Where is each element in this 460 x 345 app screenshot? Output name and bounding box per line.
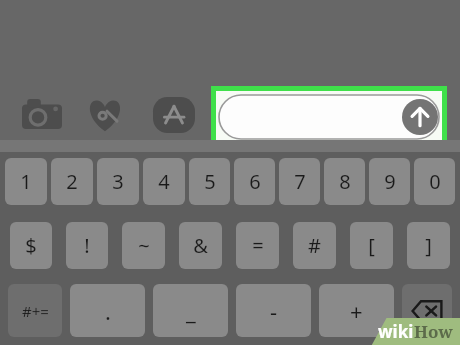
button[interactable]: 4 <box>143 158 185 205</box>
button[interactable]: Backspace <box>402 284 452 337</box>
button[interactable]: App Store <box>153 97 195 133</box>
staticText: = <box>252 232 264 259</box>
button[interactable]: + <box>319 284 394 337</box>
button[interactable]: Digital Touch <box>85 96 125 134</box>
button[interactable]: 1 <box>5 158 47 205</box>
button[interactable]: ~ <box>122 222 165 269</box>
button[interactable]: 6 <box>234 158 275 205</box>
button[interactable]: 5 <box>189 158 230 205</box>
staticText: - <box>270 296 278 326</box>
button[interactable]: #+= <box>8 284 62 337</box>
staticText: + <box>350 296 363 326</box>
button[interactable]: [ <box>350 222 393 269</box>
button[interactable]: = <box>236 222 279 269</box>
staticText: ~ <box>138 232 150 259</box>
staticText: & <box>193 232 208 259</box>
staticText: 8 <box>339 168 351 195</box>
staticText: _ <box>186 296 196 326</box>
button[interactable]: 3 <box>97 158 139 205</box>
staticText: 6 <box>249 168 261 195</box>
staticText: # <box>308 232 321 259</box>
staticText: . <box>105 296 111 326</box>
staticText: 3 <box>112 168 124 195</box>
staticText: 2 <box>66 168 78 195</box>
staticText: $ <box>25 232 37 259</box>
staticText: 7 <box>294 168 306 195</box>
button[interactable]: 9 <box>369 158 410 205</box>
staticText: wiki <box>378 320 414 343</box>
button[interactable]: Send <box>402 99 438 135</box>
staticText: 9 <box>384 168 396 195</box>
staticText: How <box>414 320 453 343</box>
button[interactable]: Send <box>216 91 442 143</box>
button[interactable]: # <box>293 222 336 269</box>
button[interactable]: & <box>179 222 222 269</box>
button[interactable]: - <box>236 284 311 337</box>
staticText: [ <box>368 232 375 259</box>
staticText: 5 <box>204 168 216 195</box>
button[interactable]: ! <box>66 222 108 269</box>
button[interactable]: 2 <box>51 158 93 205</box>
staticText: ! <box>84 232 90 259</box>
staticText: 4 <box>158 168 170 195</box>
button[interactable]: 7 <box>279 158 320 205</box>
button[interactable]: Camera <box>22 97 62 131</box>
button[interactable]: . <box>70 284 145 337</box>
button[interactable]: 8 <box>324 158 365 205</box>
button[interactable]: $ <box>10 222 52 269</box>
button[interactable]: 0 <box>414 158 455 205</box>
staticText: ] <box>425 232 432 259</box>
staticText: #+= <box>22 301 49 321</box>
staticText: 1 <box>20 168 32 195</box>
button[interactable]: ] <box>407 222 450 269</box>
staticText: 0 <box>429 168 441 195</box>
button[interactable]: _ <box>153 284 228 337</box>
